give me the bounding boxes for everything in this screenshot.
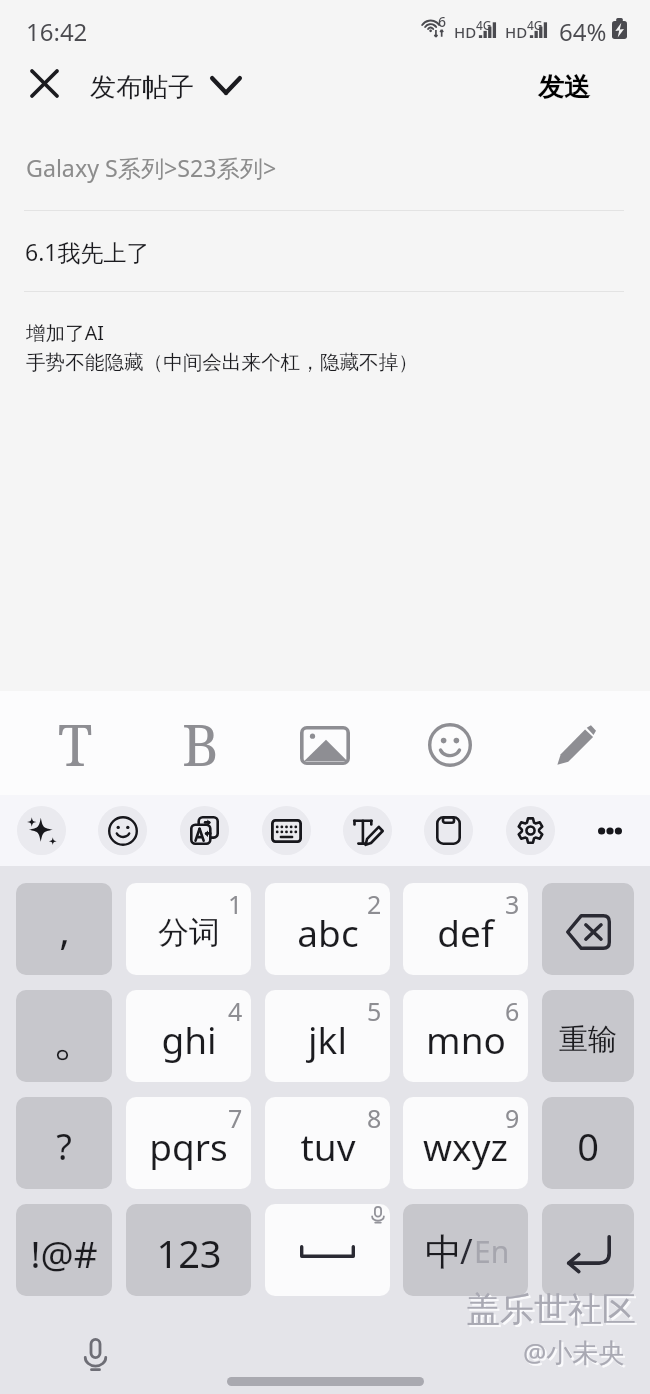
- staticText: 16:42: [26, 15, 88, 48]
- button[interactable]: 0: [542, 1097, 634, 1189]
- staticText: 增加了AI 手势不能隐藏（中间会出来个杠，隐藏不掉）: [26, 319, 418, 374]
- staticText: /: [460, 1228, 473, 1274]
- button[interactable]: Keyboard layout: [252, 797, 320, 864]
- button[interactable]: 123: [126, 1204, 251, 1296]
- staticText: 8: [367, 1101, 382, 1135]
- staticText: 分词: [158, 913, 220, 952]
- staticText: jkl: [308, 1014, 347, 1064]
- button[interactable]: Translate: [170, 797, 238, 864]
- staticText: 5: [367, 994, 382, 1028]
- staticText: 重输: [559, 1021, 617, 1058]
- staticText: Galaxy S系列>S23系列>: [26, 152, 277, 184]
- staticText: 6: [505, 994, 520, 1028]
- staticText: 中: [425, 1229, 462, 1276]
- staticText: @小未央: [525, 1336, 627, 1372]
- staticText: 1: [228, 887, 243, 921]
- staticText: def: [437, 907, 494, 957]
- button[interactable]: Insert image: [269, 693, 381, 797]
- staticText: wxyz: [423, 1121, 508, 1171]
- button[interactable]: Enter: [542, 1204, 634, 1296]
- staticText: pqrs: [149, 1121, 228, 1171]
- staticText: 盖乐世社区: [466, 1288, 636, 1331]
- button[interactable]: def: [403, 883, 528, 975]
- staticText: 4: [228, 994, 243, 1028]
- button[interactable]: Settings: [496, 797, 564, 864]
- staticText: 9: [505, 1101, 520, 1135]
- staticText: B: [182, 706, 219, 782]
- button[interactable]: tuv: [265, 1097, 390, 1189]
- button[interactable]: Space: [265, 1204, 390, 1296]
- staticText: ghi: [161, 1014, 217, 1064]
- button[interactable]: Draw: [519, 693, 631, 797]
- staticText: ?: [56, 1122, 72, 1171]
- button[interactable]: 重输: [542, 990, 634, 1082]
- staticText: En: [474, 1231, 510, 1272]
- button[interactable]: pqrs: [126, 1097, 251, 1189]
- staticText: T: [58, 706, 93, 782]
- button[interactable]: abc: [265, 883, 390, 975]
- staticText: ,: [59, 902, 70, 956]
- button[interactable]: !@#: [16, 1204, 112, 1296]
- button[interactable]: mno: [403, 990, 528, 1082]
- staticText: mno: [426, 1014, 506, 1064]
- staticText: 。: [52, 1007, 102, 1070]
- staticText: @小未央: [523, 1334, 625, 1370]
- button[interactable]: More: [576, 797, 644, 864]
- staticText: HD: [454, 22, 477, 42]
- staticText: tuv: [300, 1121, 356, 1171]
- staticText: abc: [297, 907, 359, 957]
- staticText: 2: [367, 887, 382, 921]
- staticText: !@#: [30, 1228, 98, 1278]
- staticText: 3: [505, 887, 520, 921]
- staticText: 6: [438, 12, 447, 31]
- button[interactable]: 。: [16, 990, 112, 1082]
- button[interactable]: ?: [16, 1097, 112, 1189]
- button[interactable]: 中: [403, 1204, 528, 1296]
- button[interactable]: Emoji: [88, 797, 156, 864]
- staticText: 发送: [538, 71, 590, 104]
- button[interactable]: ,: [16, 883, 112, 975]
- button[interactable]: Text style: [19, 693, 131, 797]
- staticText: 6.1我先上了: [25, 236, 150, 267]
- button[interactable]: 发送: [524, 51, 604, 123]
- staticText: 4G: [476, 17, 492, 33]
- staticText: 发布帖子: [90, 71, 194, 104]
- button[interactable]: AI assist: [7, 797, 75, 864]
- button[interactable]: Clipboard: [414, 797, 482, 864]
- staticText: HD: [505, 22, 528, 42]
- staticText: 7: [228, 1101, 243, 1135]
- button[interactable]: wxyz: [403, 1097, 528, 1189]
- staticText: 123: [156, 1227, 222, 1279]
- staticText: 4G: [527, 17, 543, 33]
- staticText: 0: [577, 1120, 599, 1172]
- staticText: 盖乐世社区: [468, 1290, 638, 1333]
- button[interactable]: Emoji: [394, 693, 506, 797]
- button[interactable]: Backspace: [542, 883, 634, 975]
- button[interactable]: 发布帖子: [84, 51, 248, 123]
- button[interactable]: Close: [14, 53, 74, 113]
- button[interactable]: 分词: [126, 883, 251, 975]
- button[interactable]: Bold: [144, 693, 256, 797]
- button[interactable]: ghi: [126, 990, 251, 1082]
- staticText: 64%: [559, 15, 607, 48]
- button[interactable]: Voice input: [71, 1330, 119, 1378]
- button[interactable]: jkl: [265, 990, 390, 1082]
- button[interactable]: Handwriting: [333, 797, 401, 864]
